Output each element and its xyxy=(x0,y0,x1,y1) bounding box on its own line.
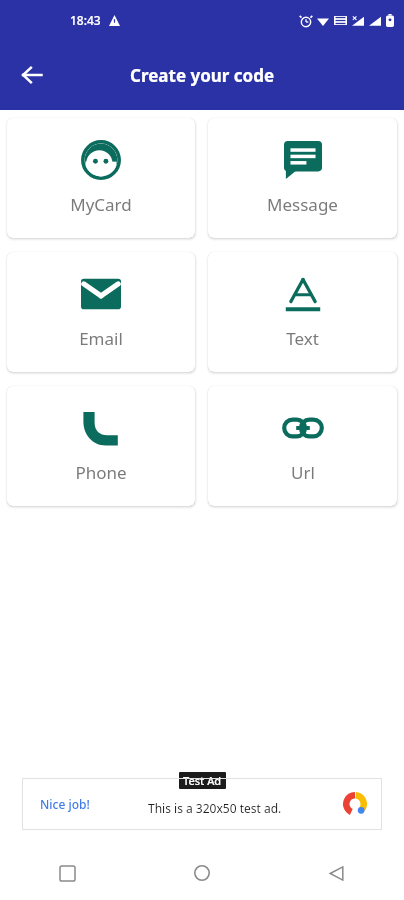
button[interactable]: MyCard xyxy=(7,118,195,238)
button[interactable]: Message xyxy=(208,118,397,238)
button[interactable]: Phone xyxy=(7,386,195,506)
staticText: Create your code xyxy=(130,64,275,87)
button[interactable]: Back xyxy=(8,51,56,99)
staticText: This is a 320x50 test ad. xyxy=(148,800,282,816)
staticText: Email xyxy=(79,327,123,350)
button[interactable]: Url xyxy=(208,386,397,506)
staticText: Phone xyxy=(75,461,127,484)
staticText: Nice job! xyxy=(40,796,90,812)
button[interactable]: Home xyxy=(134,846,269,900)
staticText: Url xyxy=(291,461,315,484)
button[interactable]: Back xyxy=(269,846,404,900)
button[interactable]: Advertisement xyxy=(22,778,382,830)
staticText: 18:43 xyxy=(70,12,101,28)
staticText: Test Ad xyxy=(183,773,222,788)
button[interactable]: Recents xyxy=(0,846,134,900)
staticText: Text xyxy=(286,327,319,350)
staticText: Message xyxy=(267,193,338,216)
button[interactable]: Email xyxy=(7,252,195,372)
staticText: MyCard xyxy=(70,193,132,216)
button[interactable]: Text xyxy=(208,252,397,372)
